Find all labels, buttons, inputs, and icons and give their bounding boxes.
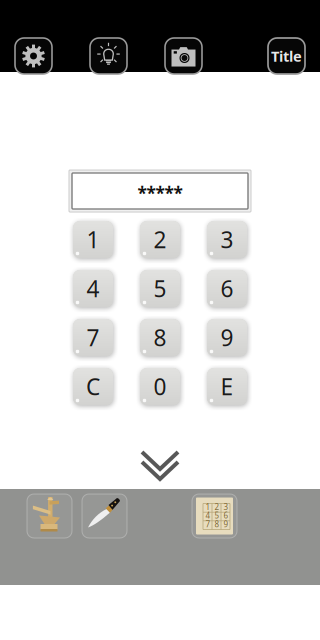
staticText: 2 xyxy=(214,501,219,512)
staticText: 3 xyxy=(223,501,228,512)
staticText: 6 xyxy=(223,510,228,521)
button[interactable]: Title xyxy=(268,38,305,74)
button[interactable]: 7 xyxy=(73,319,113,356)
staticText: 2 xyxy=(153,224,166,254)
button[interactable]: 0 xyxy=(140,368,180,405)
staticText: ***** xyxy=(137,181,182,204)
staticText: 3 xyxy=(220,224,233,254)
staticText: Title xyxy=(271,46,302,66)
staticText: 9 xyxy=(223,519,228,529)
button[interactable]: Camera xyxy=(165,38,202,74)
button[interactable]: 4 xyxy=(73,270,113,307)
staticText: E xyxy=(220,371,233,401)
button[interactable]: E xyxy=(207,368,247,405)
staticText: 7 xyxy=(86,322,99,352)
staticText: 6 xyxy=(220,273,233,303)
staticText: 5 xyxy=(153,273,166,303)
button[interactable]: 1 xyxy=(73,221,113,258)
staticText: 8 xyxy=(214,519,219,529)
button[interactable]: 5 xyxy=(140,270,180,307)
staticText: C xyxy=(86,371,100,401)
button[interactable]: 8 xyxy=(140,319,180,356)
staticText: 1 xyxy=(205,501,210,512)
staticText: 9 xyxy=(220,322,233,352)
button[interactable]: Light xyxy=(90,38,127,74)
button[interactable]: 6 xyxy=(207,270,247,307)
button[interactable]: 9 xyxy=(207,319,247,356)
button[interactable]: Keypad xyxy=(192,494,237,538)
staticText: 8 xyxy=(153,322,166,352)
staticText: 5 xyxy=(214,510,219,521)
staticText: 0 xyxy=(153,371,166,401)
staticText: 1 xyxy=(86,224,99,254)
button[interactable]: Settings xyxy=(15,38,52,74)
staticText: 4 xyxy=(86,273,99,303)
button[interactable]: C xyxy=(73,368,113,405)
button[interactable]: Wooden dummy xyxy=(27,494,72,538)
button[interactable]: 3 xyxy=(207,221,247,258)
button[interactable]: Knife xyxy=(82,494,127,538)
staticText: 7 xyxy=(205,519,210,529)
button[interactable]: 2 xyxy=(140,221,180,258)
staticText: 4 xyxy=(205,510,210,521)
button[interactable]: Scroll down xyxy=(142,451,178,480)
